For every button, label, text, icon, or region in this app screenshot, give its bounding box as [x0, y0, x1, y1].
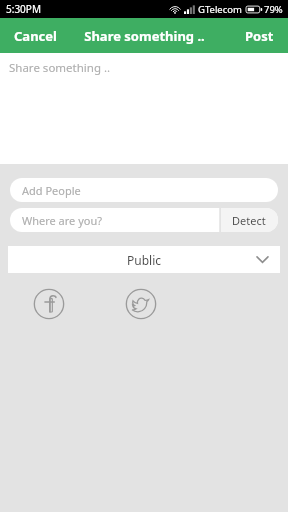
button[interactable]: Share something ..	[0, 53, 288, 164]
button[interactable]: Where are you?	[10, 208, 220, 232]
staticText: GTelecom	[198, 3, 242, 16]
button[interactable]: Detect	[220, 208, 278, 232]
staticText: Add People	[22, 183, 81, 198]
staticText: Public	[127, 252, 162, 268]
staticText: Post	[245, 27, 274, 45]
staticText: Where are you?	[22, 213, 103, 228]
staticText: Share something ..	[84, 27, 205, 45]
staticText: 5:30PM	[6, 2, 41, 16]
staticText: Share something ..	[9, 60, 111, 76]
button[interactable]: Share to Facebook	[33, 288, 65, 320]
button[interactable]: Add People	[10, 178, 278, 202]
button[interactable]: Public	[8, 246, 280, 273]
button[interactable]: Share to Twitter	[125, 288, 157, 320]
button[interactable]: Cancel	[0, 18, 71, 53]
staticText: Detect	[232, 213, 266, 228]
staticText: 79%	[264, 3, 283, 16]
staticText: Cancel	[14, 27, 57, 45]
button[interactable]: Post	[231, 18, 288, 53]
